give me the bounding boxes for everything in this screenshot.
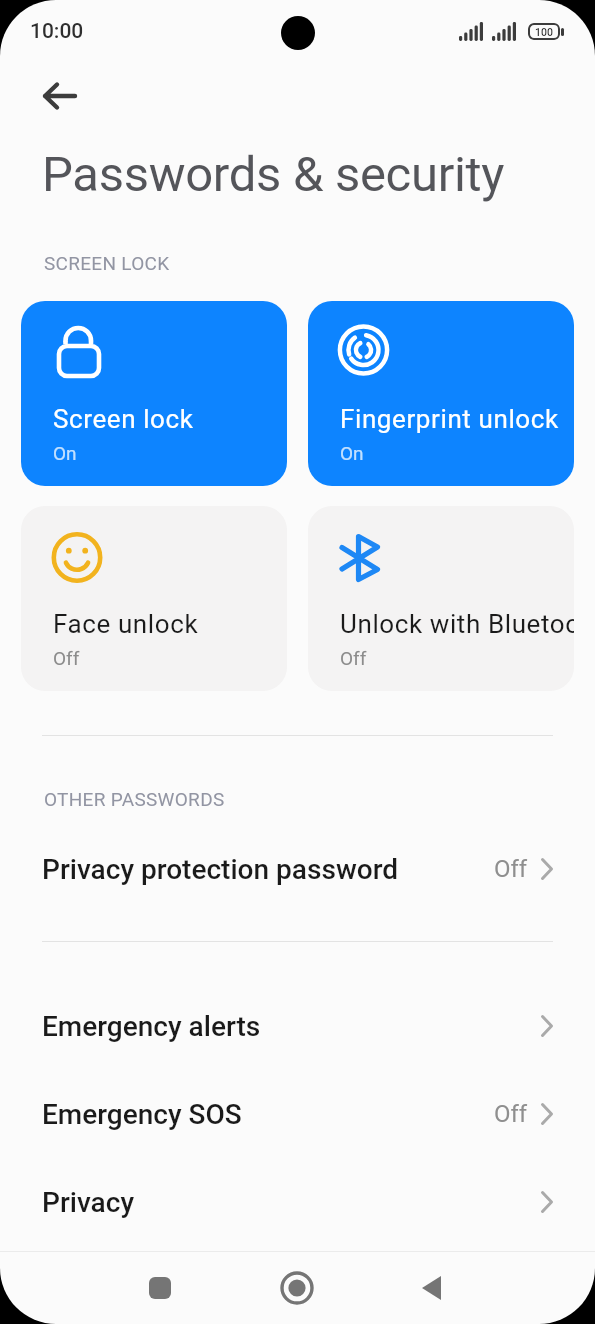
- staticText: Off: [53, 647, 80, 669]
- staticText: Privacy: [42, 1186, 135, 1219]
- staticText: Screen lock: [53, 404, 194, 434]
- staticText: Privacy protection password: [42, 853, 399, 886]
- staticText: OTHER PASSWORDS: [44, 788, 225, 810]
- staticText: On: [340, 442, 364, 464]
- staticText: Fingerprint unlock: [340, 404, 559, 434]
- button[interactable]: [261, 1252, 333, 1324]
- button[interactable]: Screen lock: [21, 301, 287, 486]
- staticText: Passwords & security: [42, 146, 505, 203]
- staticText: Face unlock: [53, 609, 199, 639]
- staticText: Unlock with Bluetooth device: [340, 609, 574, 639]
- staticText: SCREEN LOCK: [44, 252, 170, 274]
- button[interactable]: Privacy protection password: [0, 828, 595, 910]
- button[interactable]: [396, 1252, 468, 1324]
- staticText: Off: [494, 1100, 528, 1128]
- staticText: Off: [340, 647, 367, 669]
- button[interactable]: Emergency alerts: [0, 982, 595, 1070]
- button[interactable]: Emergency SOS: [0, 1070, 595, 1158]
- staticText: Emergency SOS: [42, 1098, 242, 1131]
- staticText: On: [53, 442, 77, 464]
- staticText: 100: [535, 26, 553, 38]
- button[interactable]: [124, 1252, 196, 1324]
- button[interactable]: [40, 80, 80, 112]
- staticText: Off: [494, 855, 528, 883]
- button[interactable]: Unlock with Bluetooth device: [308, 506, 574, 691]
- staticText: 10:00: [30, 19, 84, 44]
- button[interactable]: Fingerprint unlock: [308, 301, 574, 486]
- button[interactable]: Face unlock: [21, 506, 287, 691]
- staticText: Emergency alerts: [42, 1010, 261, 1043]
- button[interactable]: Privacy: [0, 1158, 595, 1246]
